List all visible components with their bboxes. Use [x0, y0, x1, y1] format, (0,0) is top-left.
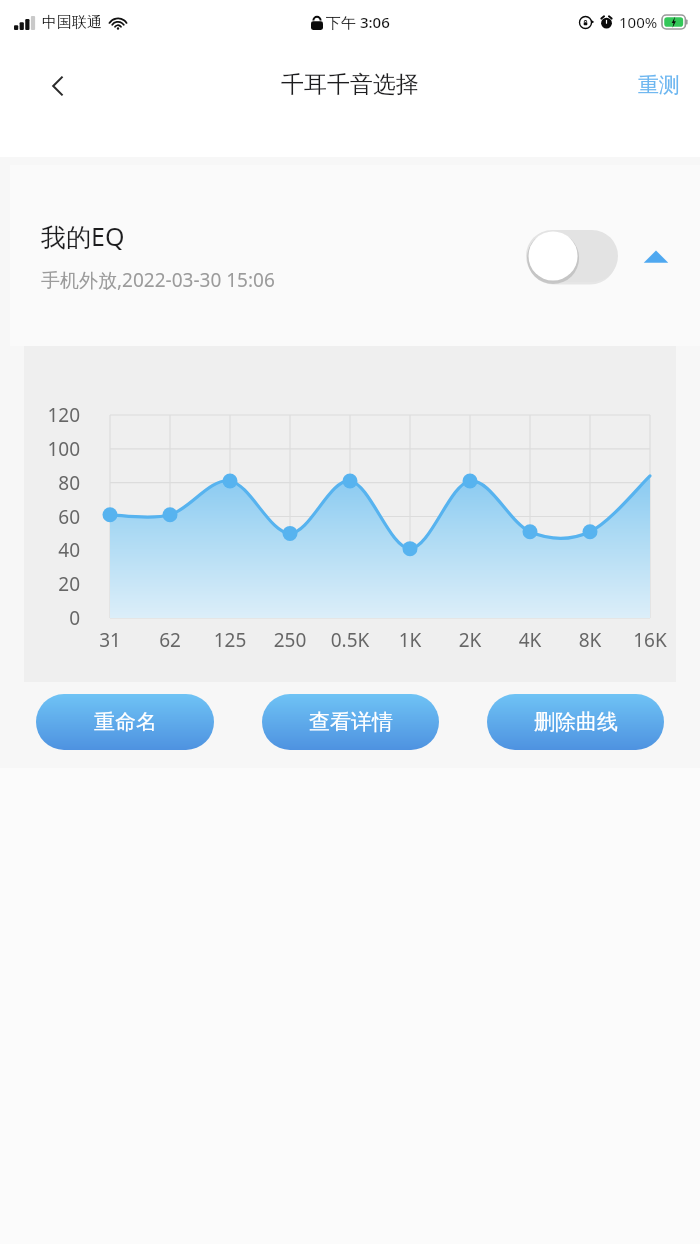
staticText: 250: [260, 627, 320, 653]
button[interactable]: 删除曲线: [487, 694, 664, 750]
button[interactable]: 我的EQ: [10, 165, 700, 346]
staticText: 1K: [380, 627, 440, 653]
staticText: 62: [140, 627, 200, 653]
staticText: 20: [28, 571, 80, 597]
staticText: 删除曲线: [534, 709, 618, 735]
staticText: 100%: [619, 12, 658, 32]
staticText: 100: [28, 436, 80, 462]
button[interactable]: 重测: [618, 60, 700, 110]
staticText: 重测: [638, 72, 680, 98]
button[interactable]: Collapse: [630, 230, 682, 282]
staticText: 下午 3:06: [326, 12, 390, 32]
staticText: 40: [28, 537, 80, 563]
button[interactable]: Back: [30, 58, 86, 114]
staticText: 查看详情: [309, 709, 393, 735]
button[interactable]: 重命名: [36, 694, 214, 750]
staticText: 手机外放,2022-03-30 15:06: [41, 267, 275, 293]
staticText: 千耳千音选择: [281, 70, 419, 99]
staticText: 31: [80, 627, 140, 653]
button[interactable]: 查看详情: [262, 694, 439, 750]
staticText: 重命名: [94, 709, 157, 735]
staticText: 我的EQ: [41, 219, 125, 253]
staticText: 120: [28, 402, 80, 428]
staticText: 16K: [620, 627, 680, 653]
staticText: 中国联通: [42, 13, 102, 32]
staticText: 125: [200, 627, 260, 653]
staticText: 0: [28, 605, 80, 631]
button[interactable]: Enable EQ: [526, 228, 618, 284]
staticText: 2K: [440, 627, 500, 653]
staticText: 8K: [560, 627, 620, 653]
staticText: 0.5K: [320, 627, 380, 653]
staticText: 80: [28, 470, 80, 496]
staticText: 60: [28, 504, 80, 530]
staticText: 4K: [500, 627, 560, 653]
